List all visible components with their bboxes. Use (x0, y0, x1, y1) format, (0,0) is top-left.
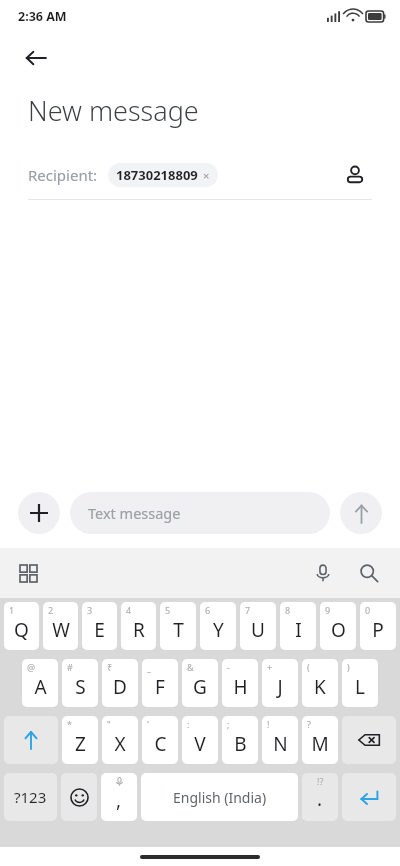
staticText: , (116, 787, 122, 813)
button[interactable]: ₹ (102, 659, 138, 707)
staticText: * (67, 718, 72, 730)
staticText: B (234, 731, 247, 757)
staticText: A (34, 674, 47, 700)
button[interactable]: * (62, 716, 98, 764)
staticText: 2 (48, 604, 54, 616)
button[interactable]: @ (22, 659, 58, 707)
staticText: 7 (245, 604, 251, 616)
staticText: O (331, 617, 346, 643)
staticText: " (107, 718, 111, 730)
button[interactable]: Keyboard options (12, 557, 44, 589)
button[interactable]: ? (302, 716, 338, 764)
button[interactable]: Send (340, 492, 382, 534)
button[interactable]: ?123 (4, 773, 57, 821)
staticText: !? (317, 775, 324, 787)
button[interactable]: , (101, 773, 137, 821)
button[interactable]: _ (142, 659, 178, 707)
staticText: K (314, 674, 326, 700)
staticText: . (317, 786, 323, 812)
staticText: - (227, 661, 230, 673)
button[interactable]: : (182, 716, 218, 764)
staticText: 18730218809 (116, 166, 198, 184)
staticText: I (295, 617, 302, 643)
button[interactable]: 18730218809 (108, 163, 218, 187)
staticText: 5 (165, 604, 171, 616)
button[interactable]: ( (302, 659, 338, 707)
button[interactable]: 2 (43, 602, 78, 650)
button[interactable]: Text message (70, 492, 330, 534)
staticText: ) (347, 661, 350, 673)
staticText: T (173, 617, 184, 643)
button[interactable]: Shift (4, 716, 58, 764)
staticText: X (114, 731, 126, 757)
staticText: & (187, 661, 194, 673)
button[interactable]: Contacts (338, 158, 372, 192)
button[interactable]: English (India) (141, 773, 298, 821)
button[interactable]: 7 (240, 602, 276, 650)
staticText: 8 (285, 604, 291, 616)
staticText: @ (27, 661, 36, 673)
staticText: ? (307, 718, 311, 730)
button[interactable]: Search (352, 556, 386, 590)
staticText: J (277, 674, 283, 700)
staticText: # (67, 661, 73, 673)
button[interactable]: Emoji (61, 773, 97, 821)
button[interactable]: Voice input (306, 556, 340, 590)
button[interactable]: 0 (360, 602, 396, 650)
button[interactable]: 4 (121, 602, 156, 650)
staticText: ; (227, 718, 230, 730)
staticText: + (267, 661, 273, 673)
button[interactable]: 1 (4, 602, 39, 650)
staticText: 2:36 AM (18, 8, 67, 25)
staticText: 4 (126, 604, 132, 616)
button[interactable]: Enter (342, 773, 396, 821)
staticText: New message (28, 92, 199, 129)
staticText: 0 (365, 604, 371, 616)
button[interactable]: ' (142, 716, 178, 764)
button[interactable]: 8 (280, 602, 316, 650)
staticText: H (233, 674, 248, 700)
button[interactable]: + (262, 659, 298, 707)
staticText: U (251, 617, 265, 643)
staticText: Recipient: (28, 165, 98, 185)
staticText: _ (147, 661, 151, 673)
staticText: E (94, 617, 105, 643)
button[interactable]: " (102, 716, 138, 764)
staticText: R (133, 617, 145, 643)
staticText: Z (75, 731, 86, 757)
staticText: Text message (88, 503, 181, 523)
staticText: M (311, 731, 329, 757)
staticText: English (India) (173, 788, 267, 807)
button[interactable]: - (222, 659, 258, 707)
staticText: 6 (205, 604, 211, 616)
button[interactable]: & (182, 659, 218, 707)
button[interactable]: ) (342, 659, 378, 707)
staticText: D (113, 674, 127, 700)
button[interactable]: 6 (200, 602, 236, 650)
staticText: F (155, 674, 165, 700)
staticText: ' (147, 718, 150, 730)
staticText: ! (267, 718, 270, 730)
staticText: S (75, 674, 86, 700)
button[interactable]: 3 (82, 602, 117, 650)
staticText: V (194, 731, 206, 757)
staticText: P (372, 617, 384, 643)
button[interactable]: # (62, 659, 98, 707)
button[interactable]: Back (16, 38, 56, 78)
button[interactable]: Attach (18, 492, 60, 534)
staticText: ₹ (107, 661, 113, 673)
button[interactable]: ! (262, 716, 298, 764)
staticText: 1 (9, 604, 15, 616)
staticText: C (154, 731, 167, 757)
staticText: : (187, 718, 190, 730)
button[interactable]: !? (302, 773, 338, 821)
button[interactable]: 9 (320, 602, 356, 650)
staticText: W (52, 617, 70, 643)
staticText: 9 (325, 604, 331, 616)
button[interactable]: 5 (160, 602, 196, 650)
staticText: 3 (87, 604, 93, 616)
staticText: L (355, 674, 365, 700)
button[interactable]: Backspace (342, 716, 396, 764)
button[interactable]: ; (222, 716, 258, 764)
staticText: Y (213, 617, 224, 643)
